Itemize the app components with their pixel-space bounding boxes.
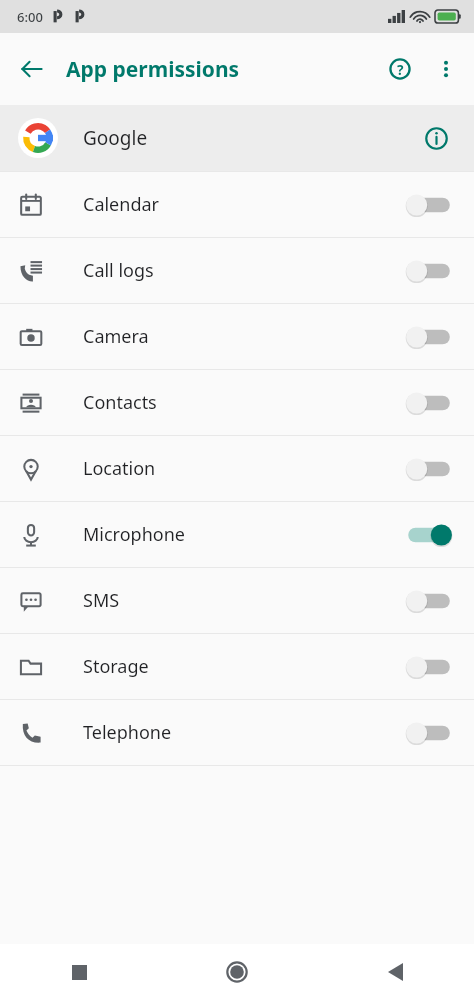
button[interactable]: Telephone bbox=[0, 700, 474, 765]
staticText: App permissions bbox=[66, 55, 240, 84]
button[interactable]: Recents bbox=[0, 944, 158, 1000]
button[interactable]: Help bbox=[376, 45, 424, 93]
button[interactable]: Off bbox=[402, 321, 454, 353]
button[interactable]: Camera bbox=[0, 304, 474, 369]
staticText: Microphone bbox=[83, 522, 185, 547]
button[interactable]: Home bbox=[158, 944, 316, 1000]
staticText: ? bbox=[397, 60, 404, 79]
button[interactable]: Contacts bbox=[0, 370, 474, 435]
button[interactable]: Call logs bbox=[0, 238, 474, 303]
staticText: Storage bbox=[83, 654, 149, 679]
button[interactable]: SMS bbox=[0, 568, 474, 633]
button[interactable]: Off bbox=[402, 255, 454, 287]
button[interactable]: Google bbox=[0, 105, 474, 171]
button[interactable]: Calendar bbox=[0, 172, 474, 237]
staticText: Camera bbox=[83, 324, 149, 349]
button[interactable]: Location bbox=[0, 436, 474, 501]
staticText: Call logs bbox=[83, 258, 154, 283]
staticText: Calendar bbox=[83, 192, 159, 217]
staticText: Telephone bbox=[83, 720, 172, 745]
button[interactable]: Off bbox=[402, 453, 454, 485]
button[interactable]: Off bbox=[402, 387, 454, 419]
button[interactable]: App info bbox=[416, 118, 456, 158]
staticText: 6:00 bbox=[17, 8, 43, 26]
button[interactable]: Off bbox=[402, 651, 454, 683]
button[interactable]: Microphone bbox=[0, 502, 474, 567]
staticText: SMS bbox=[83, 588, 120, 613]
button[interactable]: On bbox=[402, 519, 454, 551]
button[interactable]: Off bbox=[402, 189, 454, 221]
staticText: Location bbox=[83, 456, 156, 481]
button[interactable]: Off bbox=[402, 717, 454, 749]
staticText: Contacts bbox=[83, 390, 157, 415]
button[interactable]: More options bbox=[424, 47, 468, 91]
button[interactable]: Storage bbox=[0, 634, 474, 699]
button[interactable]: Back bbox=[8, 45, 56, 93]
button[interactable]: Back bbox=[316, 944, 474, 1000]
button[interactable]: Off bbox=[402, 585, 454, 617]
staticText: Google bbox=[83, 125, 148, 151]
